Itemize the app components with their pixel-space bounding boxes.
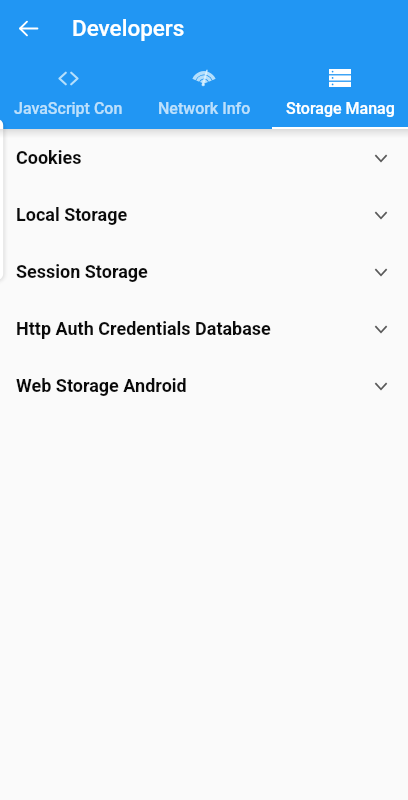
staticText: Web Storage Android	[16, 375, 187, 396]
staticText: Session Storage	[16, 261, 148, 282]
button[interactable]: Network Info	[136, 56, 272, 129]
button[interactable]: Http Auth Credentials Database	[0, 300, 408, 357]
staticText: JavaScript Con	[14, 99, 123, 118]
staticText: Network Info	[158, 99, 251, 118]
button[interactable]: Cookies	[0, 129, 408, 186]
button[interactable]: Storage Manag	[272, 56, 408, 129]
staticText: Local Storage	[16, 204, 128, 225]
button[interactable]: Web Storage Android	[0, 357, 408, 414]
staticText: Developers	[72, 15, 185, 41]
button[interactable]: Back	[0, 0, 56, 56]
staticText: Http Auth Credentials Database	[16, 318, 271, 339]
button[interactable]: JavaScript Con	[0, 56, 136, 129]
staticText: Cookies	[16, 147, 82, 168]
button[interactable]: Local Storage	[0, 186, 408, 243]
staticText: Storage Manag	[286, 99, 395, 118]
button[interactable]: Session Storage	[0, 243, 408, 300]
